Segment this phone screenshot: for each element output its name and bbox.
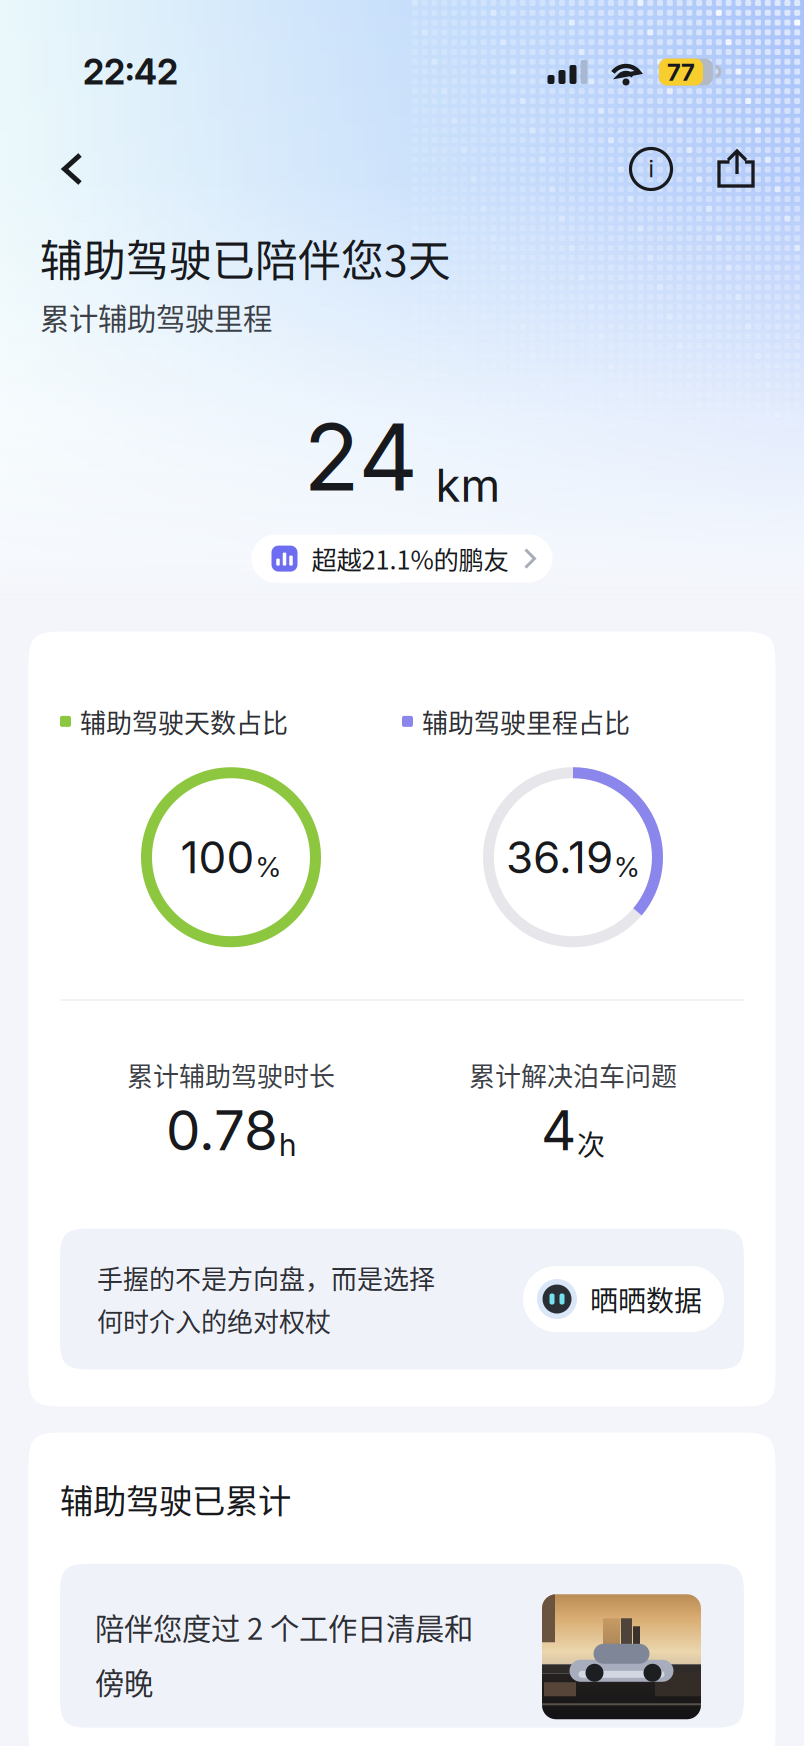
staticText: 何时介入的绝对权杖 — [97, 1301, 331, 1339]
button[interactable]: 晒晒数据 — [523, 1266, 724, 1332]
staticText: 超越21.1%的鹏友 — [311, 540, 508, 577]
staticText: 77 — [667, 57, 695, 86]
staticText: % — [614, 850, 640, 884]
staticText: % — [255, 850, 281, 884]
staticText: 累计解决泊车问题 — [469, 1056, 677, 1093]
button[interactable]: Share — [712, 145, 760, 193]
staticText: 次 — [577, 1123, 605, 1163]
staticText: 傍晚 — [95, 1660, 153, 1703]
staticText: 24 — [303, 401, 417, 513]
staticText: h — [279, 1126, 296, 1163]
staticText: 陪伴您度过 2 个工作日清晨和 — [95, 1606, 473, 1648]
staticText: 0.78 — [166, 1097, 278, 1163]
button[interactable]: Back — [44, 145, 100, 193]
staticText: i — [648, 155, 653, 183]
staticText: 辅助驾驶天数占比 — [80, 703, 288, 740]
staticText: 晒晒数据 — [590, 1279, 702, 1319]
button[interactable]: Info — [627, 145, 675, 193]
staticText: km — [435, 458, 500, 513]
staticText: 辅助驾驶里程占比 — [422, 703, 630, 740]
staticText: 4 — [541, 1097, 576, 1163]
staticText: 辅助驾驶已累计 — [60, 1474, 291, 1523]
staticText: 100 — [180, 831, 254, 884]
staticText: 手握的不是方向盘，而是选择 — [97, 1259, 435, 1296]
staticText: 辅助驾驶已陪伴您3天 — [40, 227, 451, 289]
staticText: 36.19 — [506, 831, 613, 884]
staticText: 22:42 — [83, 51, 178, 93]
staticText: 累计辅助驾驶时长 — [127, 1056, 335, 1093]
button[interactable]: 超越21.1%的鹏友 — [251, 535, 552, 583]
staticText: 累计辅助驾驶里程 — [40, 296, 272, 338]
